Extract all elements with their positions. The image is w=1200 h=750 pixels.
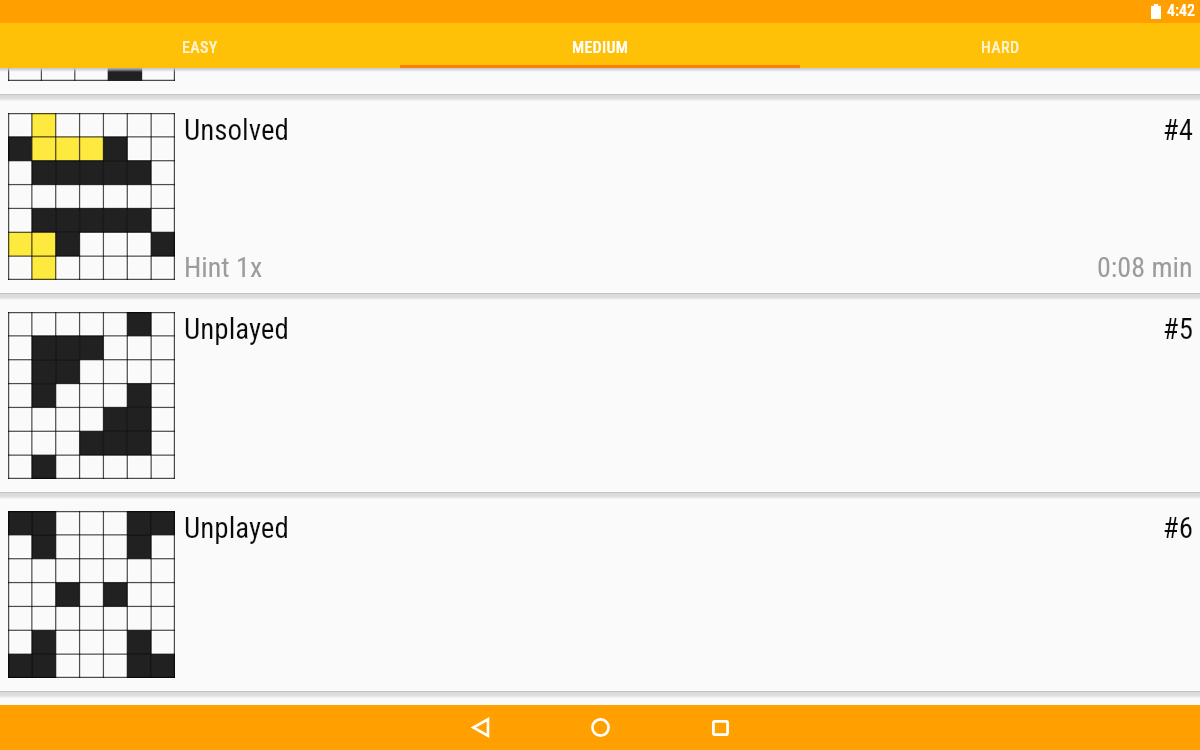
- staticText: Unplayed: [184, 511, 289, 545]
- button[interactable]: [0, 68, 1200, 93]
- button[interactable]: EASY: [0, 23, 400, 68]
- staticText: HARD: [981, 38, 1020, 57]
- button[interactable]: HARD: [800, 23, 1200, 68]
- button[interactable]: Unplayed: [0, 300, 1200, 491]
- staticText: Unsolved: [184, 113, 289, 147]
- staticText: #6: [0, 511, 1193, 545]
- button[interactable]: MEDIUM: [400, 23, 800, 68]
- staticText: #5: [0, 312, 1193, 346]
- button[interactable]: Unplayed: [0, 499, 1200, 690]
- button[interactable]: Home: [550, 705, 650, 750]
- staticText: 4:42: [1167, 1, 1196, 20]
- staticText: #4: [0, 113, 1193, 147]
- staticText: Unplayed: [184, 312, 289, 346]
- button[interactable]: Recents: [670, 705, 770, 750]
- staticText: Hint 1x: [184, 251, 263, 284]
- button[interactable]: Back: [430, 705, 530, 750]
- button[interactable]: Unsolved: [0, 101, 1200, 292]
- staticText: EASY: [182, 38, 218, 57]
- staticText: 0:08 min: [1097, 251, 1193, 284]
- staticText: MEDIUM: [572, 38, 629, 57]
